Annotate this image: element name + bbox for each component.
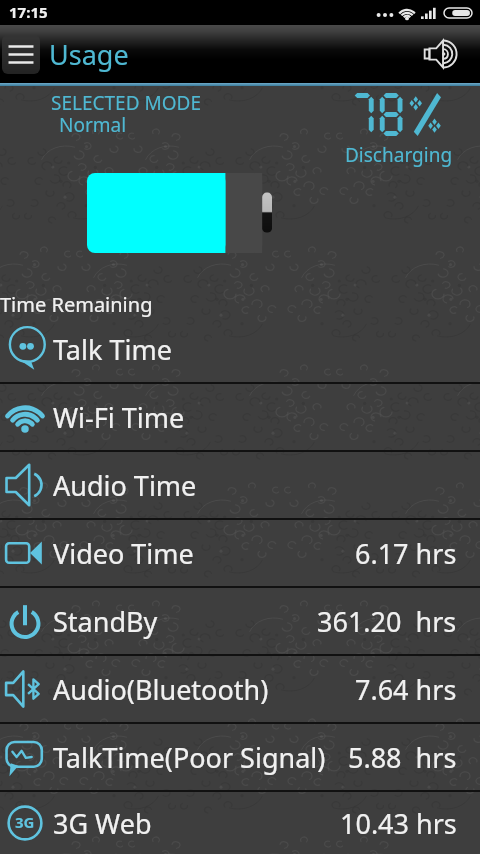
staticText: 3G	[15, 812, 35, 832]
button[interactable]: Audio Time	[0, 452, 480, 518]
staticText: 17:15	[9, 2, 48, 22]
button[interactable]: Sound settings	[413, 28, 469, 80]
staticText: Discharging	[345, 142, 453, 168]
staticText: 7.64 hrs	[355, 671, 457, 708]
staticText: SELECTED MODE	[51, 90, 201, 116]
button[interactable]: TalkTime(Poor Signal)	[0, 724, 480, 790]
staticText: 361.20 hrs	[317, 603, 457, 640]
staticText: Normal	[59, 112, 127, 138]
staticText: Wi-Fi Time	[53, 399, 185, 436]
staticText: 6.17 hrs	[355, 535, 457, 572]
button[interactable]: Audio(Bluetooth)	[0, 656, 480, 722]
staticText: 5.88 hrs	[348, 739, 457, 776]
staticText: TalkTime(Poor Signal)	[53, 739, 326, 776]
button[interactable]: Wi-Fi Time	[0, 384, 480, 450]
staticText: Video Time	[53, 535, 194, 572]
staticText: StandBy	[53, 603, 158, 640]
button[interactable]: Talk Time	[0, 316, 480, 382]
button[interactable]: Menu	[2, 35, 40, 74]
staticText: Audio Time	[53, 467, 197, 504]
staticText: Talk Time	[53, 331, 172, 368]
staticText: Usage	[49, 36, 129, 73]
staticText: 3G Web	[53, 805, 152, 842]
staticText: Time Remaining	[0, 291, 153, 318]
button[interactable]: Video Time	[0, 520, 480, 586]
staticText: 10.43 hrs	[340, 805, 457, 842]
button[interactable]: StandBy	[0, 588, 480, 654]
staticText: Audio(Bluetooth)	[53, 671, 269, 708]
button[interactable]: 3G	[0, 792, 480, 854]
